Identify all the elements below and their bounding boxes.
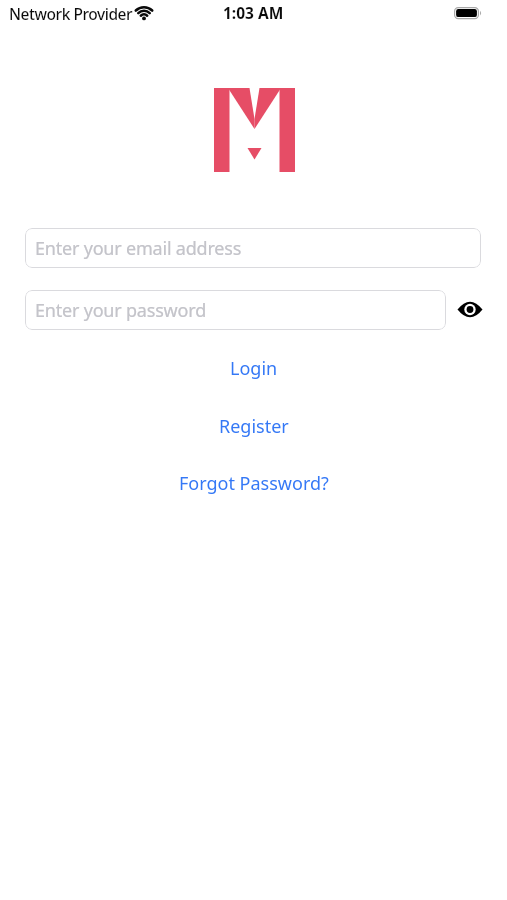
button[interactable]: Enter your email address <box>25 228 481 268</box>
button[interactable]: Enter your password <box>25 290 446 330</box>
button[interactable]: Register <box>211 413 297 440</box>
staticText: Enter your email address <box>35 236 242 261</box>
staticText: Login <box>230 356 278 381</box>
button[interactable]: Forgot Password? <box>171 470 337 497</box>
staticText: Register <box>219 414 289 439</box>
button[interactable]: Login <box>222 355 286 382</box>
staticText: Forgot Password? <box>179 471 329 496</box>
staticText: 1:03 AM <box>223 2 284 23</box>
staticText: Network Provider <box>9 3 133 24</box>
staticText: Enter your password <box>35 298 206 323</box>
button[interactable] <box>452 296 488 324</box>
